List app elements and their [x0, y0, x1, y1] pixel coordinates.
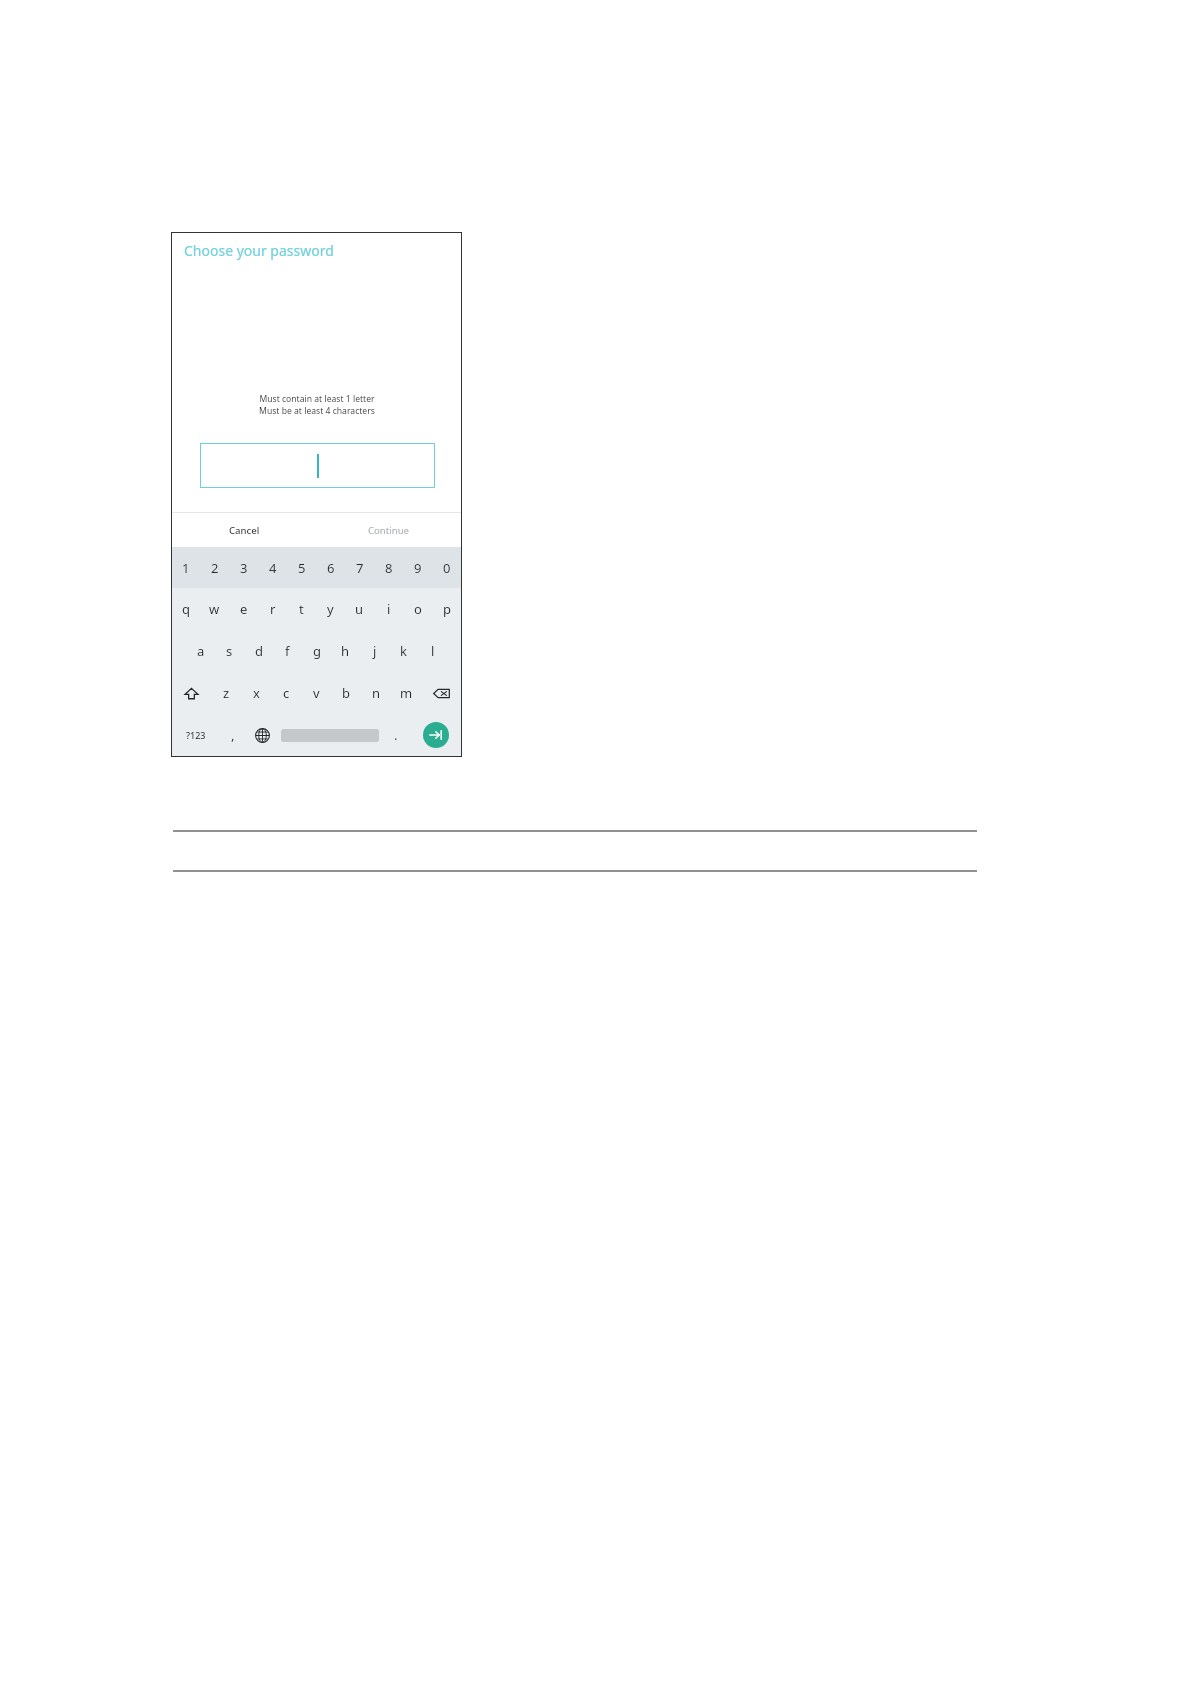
staticText: j — [373, 642, 377, 660]
button[interactable]: 1 — [172, 547, 200, 588]
button[interactable]: p — [432, 588, 461, 630]
staticText: v — [313, 684, 320, 702]
button[interactable]: 2 — [200, 547, 229, 588]
staticText: ?123 — [186, 729, 206, 741]
staticText: Cancel — [229, 524, 260, 537]
button[interactable]: 0 — [432, 547, 461, 588]
staticText: 3 — [240, 559, 248, 577]
button[interactable]: b — [331, 672, 361, 714]
button[interactable]: m — [391, 672, 421, 714]
button[interactable]: g — [302, 630, 331, 672]
button[interactable]: x — [241, 672, 271, 714]
button[interactable]: ?123 — [172, 714, 219, 756]
button[interactable]: v — [301, 672, 331, 714]
staticText: Must be at least 4 characters — [259, 405, 375, 417]
staticText: z — [223, 684, 230, 702]
staticText: 1 — [182, 559, 190, 577]
staticText: l — [431, 642, 435, 660]
button[interactable]: 7 — [345, 547, 374, 588]
staticText: p — [443, 600, 451, 618]
button[interactable]: k — [389, 630, 418, 672]
button[interactable]: d — [244, 630, 273, 672]
staticText: Must contain at least 1 letter — [259, 393, 375, 405]
button[interactable]: t — [287, 588, 316, 630]
staticText: t — [299, 600, 304, 618]
staticText: 2 — [211, 559, 219, 577]
button[interactable]: 9 — [403, 547, 432, 588]
staticText: 6 — [327, 559, 335, 577]
staticText: 4 — [269, 559, 277, 577]
staticText: a — [197, 642, 205, 660]
button[interactable]: o — [403, 588, 432, 630]
staticText: 9 — [414, 559, 422, 577]
staticText: f — [285, 642, 290, 660]
button[interactable]: a — [186, 630, 215, 672]
staticText: r — [270, 600, 276, 618]
staticText: Choose your password — [184, 241, 334, 260]
button[interactable]: q — [172, 588, 200, 630]
button[interactable]: Next — [410, 714, 461, 756]
staticText: i — [387, 600, 391, 618]
button[interactable]: 5 — [287, 547, 316, 588]
button[interactable]: . — [382, 714, 410, 756]
staticText: 0 — [443, 559, 451, 577]
staticText: n — [372, 684, 381, 702]
button[interactable]: j — [360, 630, 389, 672]
button[interactable]: 8 — [374, 547, 403, 588]
staticText: y — [327, 600, 334, 618]
button[interactable]: h — [331, 630, 360, 672]
button[interactable]: w — [200, 588, 229, 630]
button[interactable]: y — [316, 588, 345, 630]
button[interactable]: f — [273, 630, 302, 672]
button[interactable]: Backspace — [421, 672, 461, 714]
button[interactable]: 4 — [258, 547, 287, 588]
staticText: e — [240, 600, 248, 618]
staticText: b — [342, 684, 350, 702]
button[interactable]: i — [374, 588, 403, 630]
button[interactable]: l — [418, 630, 447, 672]
button[interactable]: e — [229, 588, 258, 630]
staticText: 5 — [298, 559, 306, 577]
staticText: , — [231, 726, 235, 744]
staticText: g — [313, 642, 321, 660]
button[interactable]: n — [361, 672, 391, 714]
staticText: m — [400, 684, 413, 702]
button[interactable]: 3 — [229, 547, 258, 588]
staticText: h — [341, 642, 350, 660]
staticText: o — [414, 600, 422, 618]
staticText: d — [255, 642, 263, 660]
staticText: k — [400, 642, 407, 660]
staticText: Continue — [368, 524, 410, 537]
staticText: x — [253, 684, 260, 702]
staticText: 8 — [385, 559, 393, 577]
button[interactable]: 6 — [316, 547, 345, 588]
button[interactable] — [277, 714, 382, 756]
staticText: s — [226, 642, 233, 660]
button[interactable]: Continue — [316, 513, 461, 547]
button[interactable]: Shift — [172, 672, 211, 714]
button[interactable]: c — [271, 672, 301, 714]
staticText: w — [209, 600, 220, 618]
button[interactable]: Cancel — [172, 513, 316, 547]
staticText: q — [182, 600, 190, 618]
button[interactable]: z — [211, 672, 241, 714]
staticText: u — [355, 600, 364, 618]
staticText: c — [283, 684, 290, 702]
button[interactable]: u — [345, 588, 374, 630]
button[interactable] — [201, 444, 434, 487]
button[interactable]: , — [219, 714, 247, 756]
button[interactable]: r — [258, 588, 287, 630]
staticText: 7 — [356, 559, 364, 577]
staticText: . — [394, 726, 398, 744]
button[interactable]: Change language — [247, 714, 277, 756]
button[interactable]: s — [215, 630, 244, 672]
